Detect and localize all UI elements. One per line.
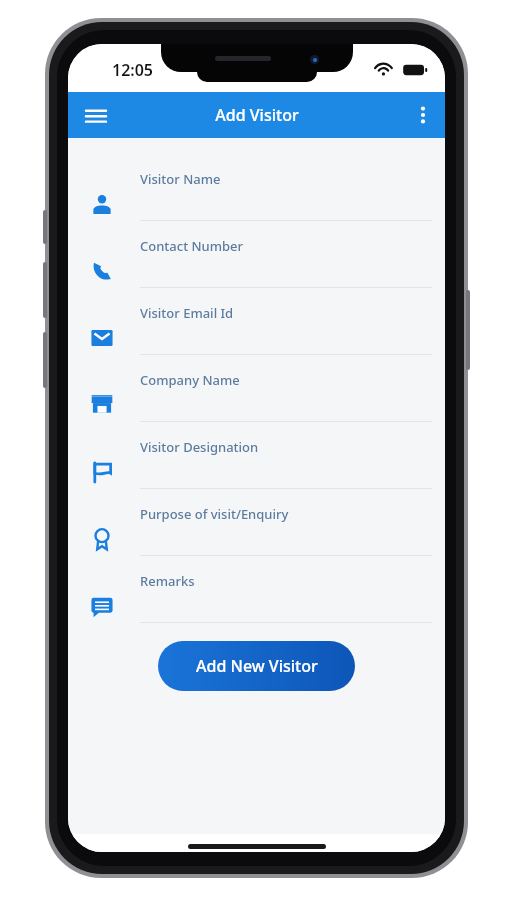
button[interactable]: Visitor Email Id xyxy=(68,296,445,363)
staticText: Purpose of visit/Enquiry xyxy=(140,505,289,523)
button[interactable]: Contact Number xyxy=(68,229,445,296)
other: Visitor Designation xyxy=(90,460,114,484)
staticText: Add New Visitor xyxy=(196,655,318,677)
button[interactable]: More options xyxy=(409,99,437,131)
button[interactable]: Open navigation menu xyxy=(80,99,112,131)
staticText: Add Visitor xyxy=(215,104,299,126)
staticText: Company Name xyxy=(140,371,240,389)
other: Contact Number xyxy=(90,259,114,283)
staticText: Remarks xyxy=(140,572,195,590)
other: Visitor Email Id xyxy=(90,326,114,350)
button[interactable]: Visitor Name xyxy=(68,162,445,229)
staticText: Contact Number xyxy=(140,237,244,255)
other: Purpose of visit/Enquiry xyxy=(90,527,114,551)
button[interactable]: Purpose of visit/Enquiry xyxy=(68,497,445,564)
other: Remarks xyxy=(90,594,114,618)
staticText: 12:05 xyxy=(112,59,154,81)
staticText: Visitor Designation xyxy=(140,438,259,456)
staticText: Visitor Email Id xyxy=(140,304,234,322)
button[interactable]: Remarks xyxy=(68,564,445,631)
button[interactable]: Add New Visitor xyxy=(158,641,355,691)
button[interactable]: Company Name xyxy=(68,363,445,430)
other: Company Name xyxy=(90,393,114,417)
button[interactable]: Visitor Designation xyxy=(68,430,445,497)
staticText: Visitor Name xyxy=(140,170,221,188)
other: Visitor Name xyxy=(90,192,114,216)
